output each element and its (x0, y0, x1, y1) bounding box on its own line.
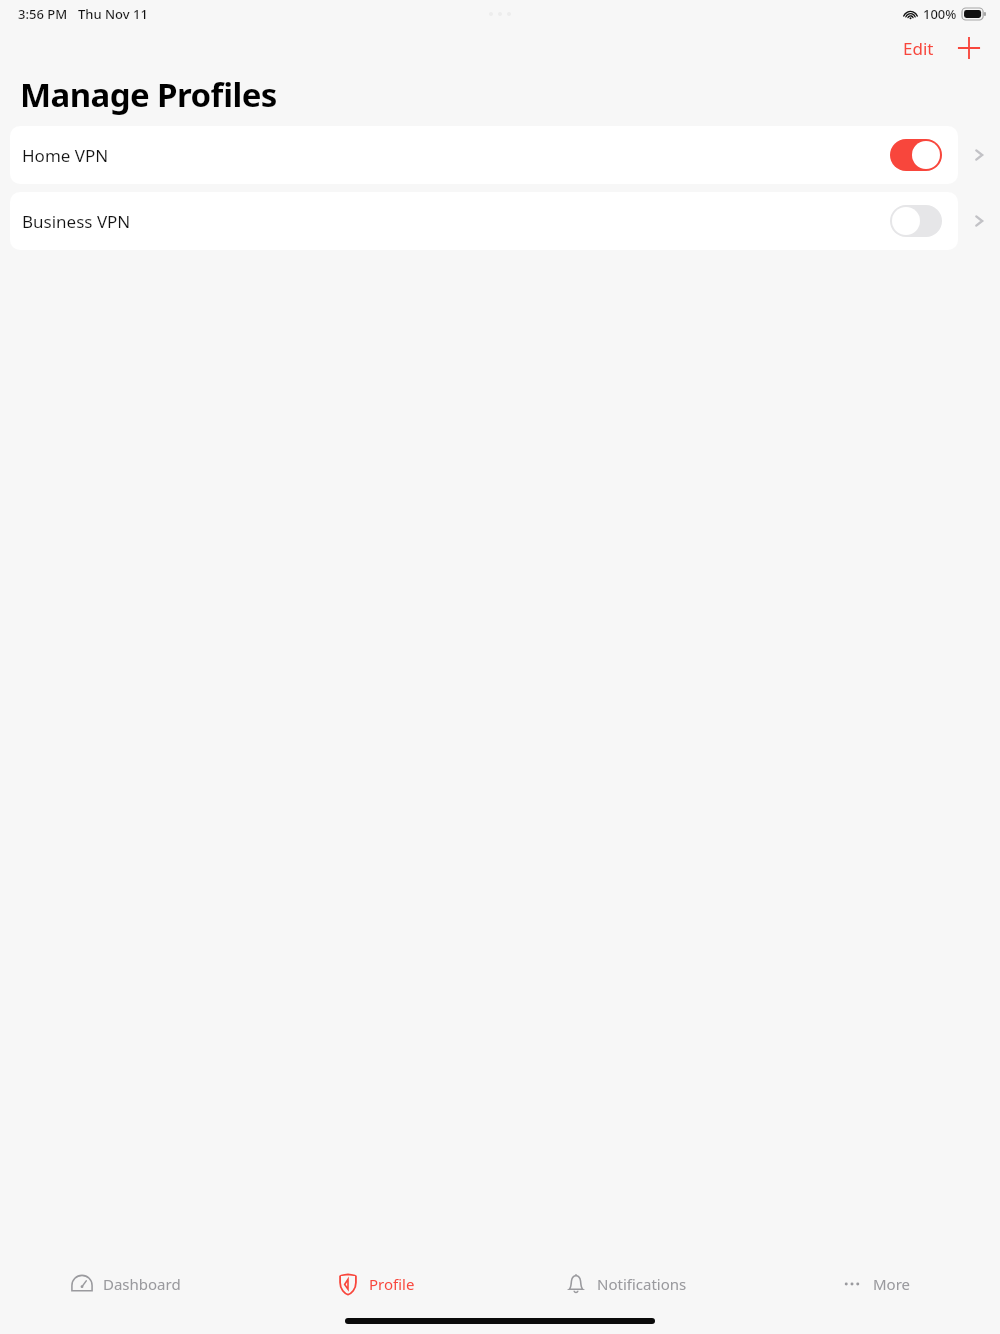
staticText: Business VPN (22, 210, 890, 233)
button[interactable]: Toggle on (890, 139, 942, 171)
staticText: Dashboard (103, 1274, 181, 1294)
button[interactable]: Business VPN (10, 192, 958, 250)
button[interactable]: Open Home VPN details (958, 126, 1000, 184)
button[interactable]: Toggle off (890, 205, 942, 237)
staticText: Notifications (597, 1274, 687, 1294)
staticText: 100% (923, 5, 957, 23)
button[interactable]: Open Business VPN details (958, 192, 1000, 250)
button[interactable]: Dashboard (0, 1256, 250, 1312)
button[interactable]: Profile (250, 1256, 500, 1312)
button[interactable]: More (750, 1256, 1000, 1312)
staticText: Profile (369, 1274, 415, 1294)
button[interactable]: Add profile (952, 31, 986, 65)
staticText: Thu Nov 11 (78, 5, 148, 23)
button[interactable]: Edit (895, 33, 942, 64)
staticText: Manage Profiles (20, 72, 277, 117)
staticText: Home VPN (22, 144, 890, 167)
staticText: Edit (903, 37, 934, 60)
staticText: 3:56 PM (18, 5, 68, 23)
button[interactable]: Notifications (500, 1256, 750, 1312)
staticText: More (873, 1274, 911, 1294)
button[interactable]: Home VPN (10, 126, 958, 184)
